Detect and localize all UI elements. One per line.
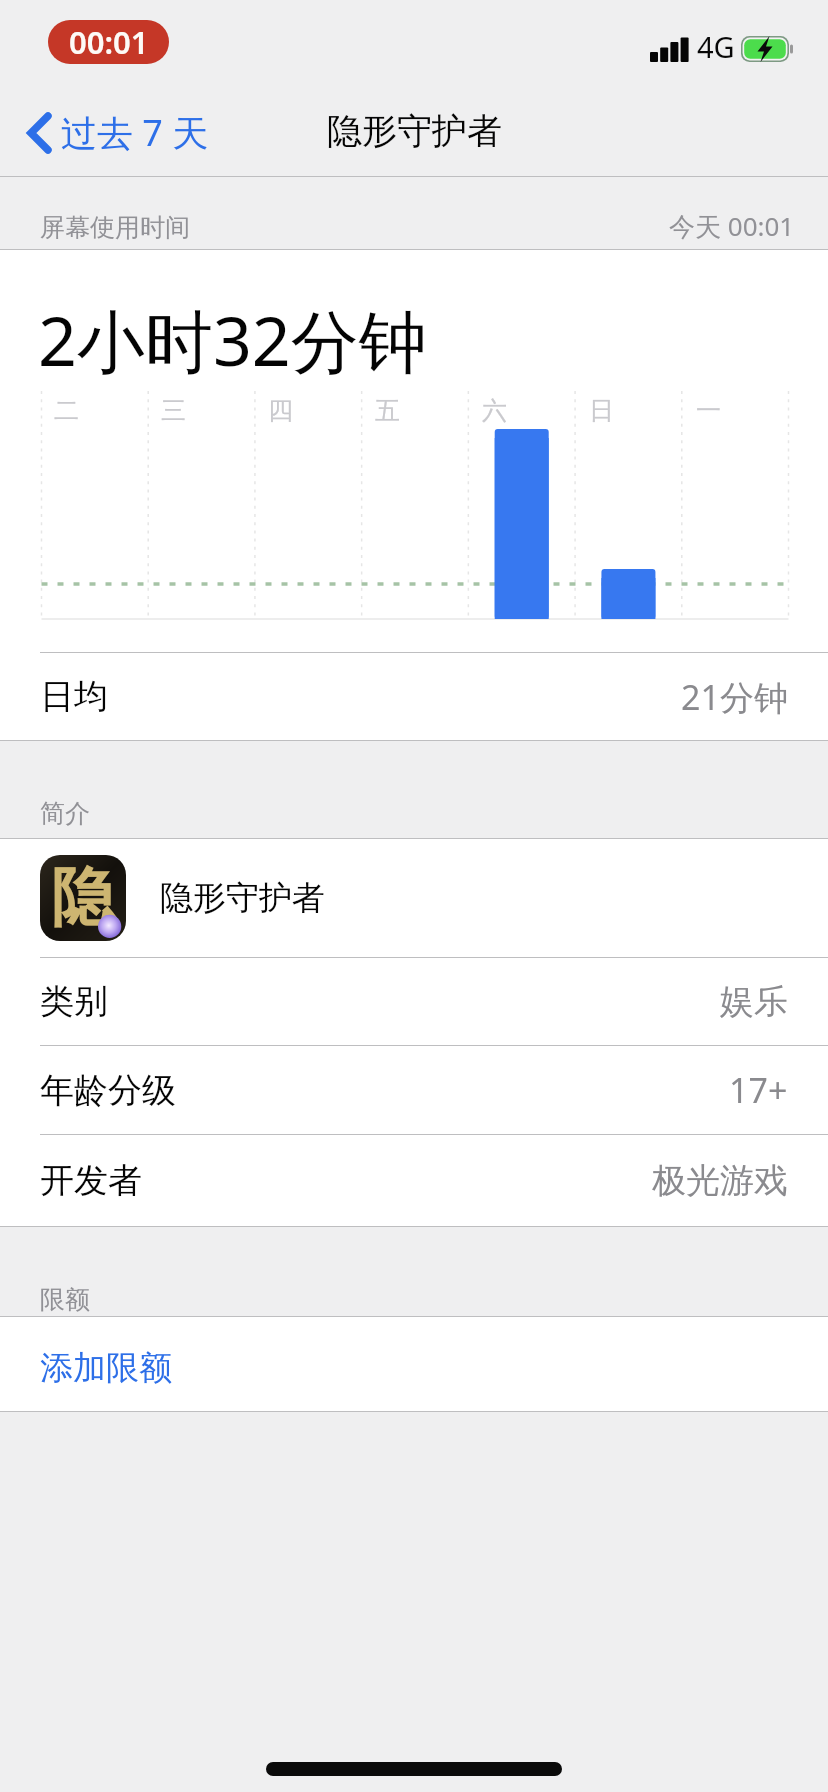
button[interactable]: 添加限额 (0, 1317, 828, 1411)
button[interactable]: 过去 7 天 (0, 99, 223, 168)
staticText: 隐形守护者 (160, 877, 325, 919)
staticText: 简介 (40, 798, 90, 829)
staticText: 过去 7 天 (61, 108, 209, 157)
staticText: 隐 (51, 857, 115, 938)
staticText: 00:01 (69, 21, 149, 63)
button[interactable]: Recording timer 00:01 (48, 20, 169, 64)
staticText: 五 (375, 395, 400, 426)
staticText: 屏幕使用时间 (40, 212, 190, 243)
staticText: 日 (589, 395, 614, 426)
staticText: 17+ (729, 1067, 788, 1113)
button[interactable]: 年龄分级 (0, 1046, 828, 1134)
staticText: 一 (696, 395, 721, 426)
staticText: 隐形守护者 (327, 109, 502, 153)
staticText: 21分钟 (681, 674, 788, 720)
other: 隐形守护者 app icon (40, 855, 126, 941)
staticText: 今天 00:01 (669, 208, 795, 244)
staticText: 限额 (40, 1284, 90, 1315)
staticText: 开发者 (40, 1159, 142, 1202)
staticText: 日均 (40, 675, 108, 718)
staticText: 四 (268, 395, 293, 426)
staticText: 4G (697, 27, 735, 66)
staticText: 年龄分级 (40, 1069, 176, 1112)
button[interactable]: 隐形守护者 app icon (0, 839, 828, 957)
staticText: 极光游戏 (652, 1159, 788, 1202)
staticText: 二 (54, 395, 79, 426)
button[interactable]: 开发者 (0, 1135, 828, 1226)
staticText: 娱乐 (720, 980, 788, 1023)
staticText: 2小时32分钟 (38, 293, 427, 386)
button[interactable]: 日均 (0, 653, 828, 740)
staticText: 添加限额 (40, 1347, 172, 1389)
button[interactable]: 类别 (0, 958, 828, 1045)
staticText: 类别 (40, 980, 108, 1023)
staticText: 六 (482, 395, 507, 426)
staticText: 三 (161, 395, 186, 426)
